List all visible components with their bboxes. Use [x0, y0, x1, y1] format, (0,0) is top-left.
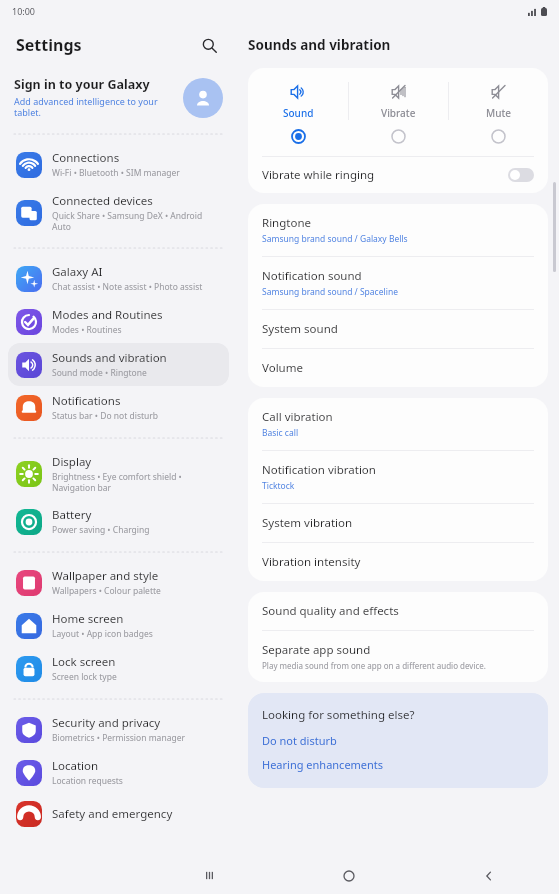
staticText: Modes and Routines	[52, 307, 163, 323]
staticText: Sound	[283, 106, 314, 120]
staticText: Status bar • Do not disturb	[52, 410, 159, 422]
staticText: Safety and emergency	[52, 806, 173, 822]
staticText: Sounds and vibration	[52, 350, 167, 366]
staticText: Sound quality and effects	[262, 603, 399, 619]
button[interactable]: Search	[195, 31, 223, 59]
staticText: Ringtone	[262, 215, 312, 231]
button[interactable]: System sound	[248, 310, 548, 349]
button[interactable]: Sounds and vibration	[8, 343, 229, 386]
staticText: Add advanced intelligence to your tablet…	[14, 95, 175, 119]
button[interactable]: Safety and emergency	[8, 794, 229, 834]
button[interactable]: Ringtone	[248, 204, 548, 257]
button[interactable]: Galaxy AI	[8, 257, 229, 300]
staticText: Power saving • Charging	[52, 524, 150, 536]
staticText: Vibrate	[381, 106, 416, 120]
button[interactable]: Separate app sound	[248, 631, 548, 682]
button[interactable]: Hearing enhancements	[262, 757, 384, 772]
staticText: Layout • App icon badges	[52, 628, 153, 640]
staticText: Play media sound from one app on a diffe…	[262, 660, 486, 671]
button[interactable]: Location	[8, 751, 229, 794]
staticText: System sound	[262, 321, 338, 337]
staticText: Lock screen	[52, 654, 116, 670]
staticText: Screen lock type	[52, 671, 117, 683]
staticText: Location	[52, 758, 99, 774]
staticText: Vibrate while ringing	[262, 167, 508, 183]
staticText: Location requests	[52, 775, 123, 787]
staticText: Hearing enhancements	[262, 757, 384, 772]
staticText: Sound mode • Ringtone	[52, 367, 147, 379]
button[interactable]: Wallpaper and style	[8, 561, 229, 604]
button[interactable]: Recent apps	[139, 857, 279, 894]
staticText: 10:00	[12, 5, 36, 17]
button[interactable]: Sound quality and effects	[248, 592, 548, 631]
button[interactable]: Home	[279, 857, 419, 894]
button[interactable]: Security and privacy	[8, 708, 229, 751]
staticText: Wi-Fi • Bluetooth • SIM manager	[52, 167, 180, 179]
button[interactable]: Connected devices	[8, 186, 229, 239]
button[interactable]: Notification sound	[248, 257, 548, 310]
staticText: Sounds and vibration	[248, 36, 391, 54]
staticText: Connections	[52, 150, 120, 166]
staticText: Samsung brand sound / Galaxy Bells	[262, 233, 408, 245]
staticText: Separate app sound	[262, 642, 371, 658]
staticText: Brightness • Eye comfort shield • Naviga…	[52, 471, 221, 493]
staticText: Connected devices	[52, 193, 153, 209]
staticText: Call vibration	[262, 409, 333, 425]
button[interactable]: Back	[419, 857, 559, 894]
staticText: System vibration	[262, 515, 353, 531]
staticText: Modes • Routines	[52, 324, 122, 336]
button[interactable]: Call vibration	[248, 398, 548, 451]
button[interactable]: Vibrate	[349, 82, 448, 144]
staticText: Galaxy AI	[52, 264, 103, 280]
staticText: Do not disturb	[262, 733, 337, 748]
button[interactable]: Sign in to your Galaxy	[14, 68, 223, 127]
button[interactable]: Mute	[449, 82, 548, 144]
button[interactable]: Vibration intensity	[248, 543, 548, 581]
button[interactable]: Home screen	[8, 604, 229, 647]
button[interactable]: Volume	[248, 349, 548, 387]
button[interactable]: System vibration	[248, 504, 548, 543]
staticText: Chat assist • Note assist • Photo assist	[52, 281, 203, 293]
staticText: Notification sound	[262, 268, 362, 284]
staticText: Sign in to your Galaxy	[14, 76, 150, 93]
staticText: Biometrics • Permission manager	[52, 732, 185, 744]
button[interactable]: Connections	[8, 143, 229, 186]
staticText: Quick Share • Samsung DeX • Android Auto	[52, 210, 221, 232]
button[interactable]: Lock screen	[8, 647, 229, 690]
button[interactable]: Vibrate while ringing	[248, 157, 548, 193]
button[interactable]: Notifications	[8, 386, 229, 429]
button[interactable]: Modes and Routines	[8, 300, 229, 343]
staticText: Display	[52, 454, 92, 470]
staticText: Ticktock	[262, 480, 295, 492]
staticText: Notification vibration	[262, 462, 376, 478]
staticText: Samsung brand sound / Spaceline	[262, 286, 398, 298]
staticText: Security and privacy	[52, 715, 161, 731]
staticText: Notifications	[52, 393, 121, 409]
staticText: Battery	[52, 507, 92, 523]
staticText: Settings	[16, 34, 82, 56]
staticText: Vibration intensity	[262, 554, 361, 570]
button[interactable]: Display	[8, 447, 229, 500]
staticText: Wallpaper and style	[52, 568, 159, 584]
button[interactable]: Do not disturb	[262, 733, 337, 748]
staticText: Looking for something else?	[262, 707, 415, 723]
staticText: Home screen	[52, 611, 124, 627]
staticText: Mute	[486, 106, 512, 120]
staticText: Basic call	[262, 427, 299, 439]
button[interactable]: Notification vibration	[248, 451, 548, 504]
staticText: Volume	[262, 360, 303, 376]
button[interactable]: Battery	[8, 500, 229, 543]
button[interactable]: Sound	[248, 82, 348, 144]
staticText: Wallpapers • Colour palette	[52, 585, 161, 597]
